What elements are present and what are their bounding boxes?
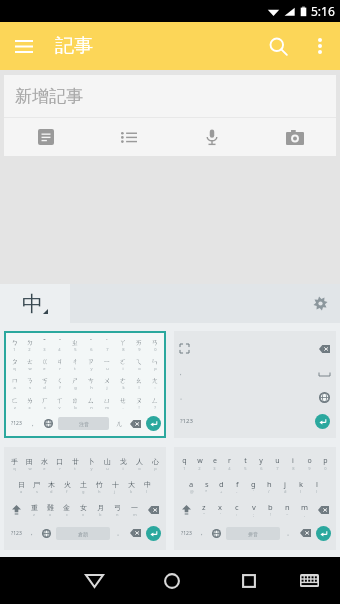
staticText: 女 [80,503,87,512]
staticText: q [182,456,187,466]
staticText: 弓 [114,503,121,512]
button[interactable]: 拼音 keyboard [174,447,336,550]
staticText: ˙ [106,337,108,347]
staticText: u [106,466,109,471]
staticText: 水 [41,457,48,466]
staticText: ㄡ [135,396,143,405]
button[interactable]: 倉頡 keyboard [4,447,166,550]
staticText: x [218,502,222,512]
staticText: n [285,502,290,512]
staticText: r [59,366,61,371]
staticText: 田 [26,457,33,466]
staticText: h [98,489,101,494]
staticText: 火 [64,480,71,489]
button[interactable]: 中 [0,284,70,323]
staticText: 2 [198,466,201,471]
staticText: ' [253,489,254,494]
staticText: ㄣ [151,357,159,366]
staticText: 大 [128,480,135,489]
staticText: t [244,456,247,466]
staticText: ˇ [43,337,46,347]
staticText: ㄟ [135,357,143,366]
button[interactable]: Recent apps [223,557,274,604]
staticText: ˋ [59,337,61,347]
staticText: b [74,405,77,410]
staticText: 9 [138,347,141,352]
staticText: 。 [180,394,185,400]
staticText: ㄕ [71,376,79,385]
staticText: w [28,366,32,371]
staticText: 金 [63,503,70,512]
staticText: 2 [28,347,31,352]
staticText: , [31,529,33,537]
staticText: ㄤ [151,376,159,385]
staticText: z [14,405,16,410]
button[interactable]: More options [300,26,340,66]
button[interactable]: Handwriting keyboard [174,331,336,438]
staticText: 卜 [88,457,95,466]
staticText: c [44,405,46,410]
staticText: z [202,502,206,512]
staticText: q [13,466,16,471]
staticText: ) [316,489,318,494]
staticText: x [49,512,52,517]
staticText: a [13,385,16,390]
staticText: ~ [286,512,289,517]
button[interactable]: Settings [300,284,340,323]
button[interactable]: Navigation menu [4,26,44,66]
staticText: ㄝ [119,396,127,405]
staticText: 口 [56,457,63,466]
staticText: ?123 [181,530,192,537]
staticText: 人 [136,457,143,466]
staticText: 5 [74,347,77,352]
staticText: u [106,366,109,371]
staticText: d [43,385,46,390]
staticText: 1 [183,466,186,471]
button[interactable]: 新增記事 [4,75,336,117]
button[interactable]: Photo note [253,118,336,156]
button[interactable]: Search [256,24,300,68]
staticText: o [138,466,141,471]
staticText: : [154,385,156,390]
staticText: 十 [112,480,119,489]
staticText: ㄇ [11,376,19,385]
staticText: , [32,420,34,428]
staticText: 5 [244,466,247,471]
button[interactable]: Switch keyboard [284,557,335,604]
button[interactable]: Voice note [170,118,253,156]
button[interactable]: Back [69,557,120,604]
staticText: ㄋ [26,376,34,385]
staticText: ㄒ [56,396,64,405]
button[interactable]: Text note [4,118,87,156]
staticText: , [201,529,203,537]
staticText: 山 [104,457,111,466]
staticText: 7 [276,466,279,471]
button[interactable]: Checklist [87,118,170,156]
staticText: ? [154,405,156,410]
staticText: n [116,512,119,517]
staticText: ㄖ [71,396,79,405]
staticText: u [275,456,280,466]
staticText: 重 [31,503,38,512]
staticText: b [99,512,102,517]
button[interactable]: Home [146,557,197,604]
staticText: 心 [152,457,159,466]
staticText: e [43,366,46,371]
staticText: ! [138,405,140,410]
staticText: 木 [48,480,55,489]
staticText: b [268,502,273,512]
staticText: j [114,489,116,494]
staticText: f [66,489,68,494]
staticText: ㄠ [135,376,143,385]
staticText: 月 [97,503,104,512]
staticText: ㄑ [56,376,64,385]
staticText: ! [270,512,272,517]
staticText: 3 [213,466,216,471]
staticText: 土 [80,480,87,489]
staticText: d [50,489,53,494]
button[interactable]: 注音 keyboard [4,331,166,438]
staticText: , [180,369,182,377]
staticText: 4 [58,347,61,352]
staticText: d [219,479,224,489]
staticText: e [213,456,217,466]
